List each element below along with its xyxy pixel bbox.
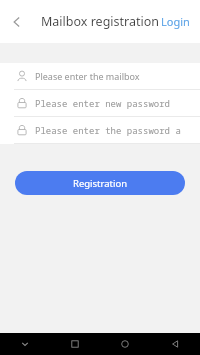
staticText: Registration	[73, 177, 128, 190]
button[interactable]: Recent apps	[50, 333, 100, 355]
staticText: Please enter new password	[35, 97, 171, 109]
button[interactable]: Please enter the password a	[0, 117, 200, 143]
button[interactable]: Home	[100, 333, 150, 355]
button[interactable]: Hide keyboard	[0, 333, 50, 355]
button[interactable]: Back	[0, 5, 34, 39]
staticText: Please enter the mailbox	[35, 70, 140, 82]
button[interactable]: Login	[151, 6, 200, 37]
staticText: Mailbox registration	[41, 13, 159, 30]
button[interactable]: Please enter the mailbox	[0, 63, 200, 89]
button[interactable]: Registration	[15, 171, 185, 195]
button[interactable]: Please enter new password	[0, 90, 200, 116]
staticText: Please enter the password a	[35, 124, 181, 136]
staticText: Login	[161, 14, 190, 29]
button[interactable]: Back	[150, 333, 200, 355]
